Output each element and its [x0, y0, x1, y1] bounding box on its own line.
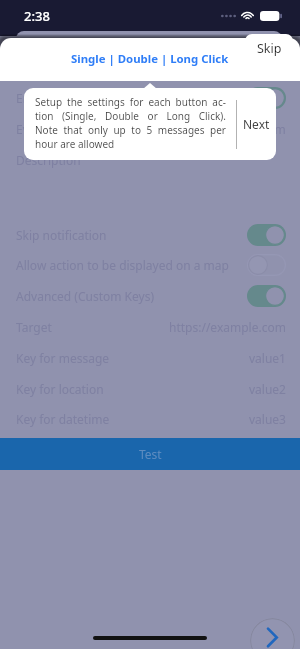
staticText: value1: [249, 350, 286, 366]
staticText: Enable action: [16, 90, 92, 106]
button[interactable]: Target: [0, 311, 300, 342]
button[interactable]: Next: [250, 618, 295, 649]
staticText: tion (Single, Double or Long Click).: [35, 109, 226, 123]
staticText: Note that only up to 5 messages per: [35, 123, 226, 137]
button[interactable]: Advanced (Custom Keys): [0, 280, 300, 311]
staticText: Advanced (Custom Keys): [16, 288, 155, 304]
button[interactable]: Event type: [0, 113, 300, 144]
staticText: Description: [16, 152, 81, 168]
staticText: alarm: [253, 121, 286, 137]
staticText: Skip notification: [16, 227, 107, 243]
button[interactable]: Switch on: [247, 224, 286, 246]
staticText: Single | Double | Long Click: [71, 51, 229, 67]
button[interactable]: Switch on: [247, 87, 286, 109]
staticText: hour are allowed: [35, 137, 226, 151]
staticText: https://example.com: [169, 319, 286, 335]
staticText: Test: [139, 446, 162, 462]
staticText: Key for location: [16, 381, 104, 397]
staticText: value3: [249, 411, 286, 427]
staticText: Next: [243, 116, 270, 132]
button[interactable]: Skip: [245, 34, 293, 62]
button[interactable]: Test: [0, 438, 300, 470]
button[interactable]: Allow action to be displayed on a map: [0, 249, 300, 280]
staticText: Allow action to be displayed on a map: [16, 257, 229, 273]
button[interactable]: Switch on: [247, 285, 286, 307]
staticText: 2:38: [24, 7, 50, 25]
button[interactable]: Description: [0, 144, 300, 175]
staticText: value2: [249, 381, 286, 397]
staticText: Target: [16, 319, 52, 335]
button[interactable]: Enable action: [0, 82, 300, 113]
button[interactable]: Next: [237, 88, 276, 160]
staticText: Event type: [16, 121, 76, 137]
button[interactable]: Single | Double | Long Click: [71, 51, 229, 67]
staticText: Key for message: [16, 350, 110, 366]
staticText: Setup the settings for each button ac-: [35, 95, 226, 109]
button[interactable]: Skip notification: [0, 219, 300, 250]
staticText: Key for datetime: [16, 411, 110, 427]
staticText: Skip: [257, 40, 282, 57]
